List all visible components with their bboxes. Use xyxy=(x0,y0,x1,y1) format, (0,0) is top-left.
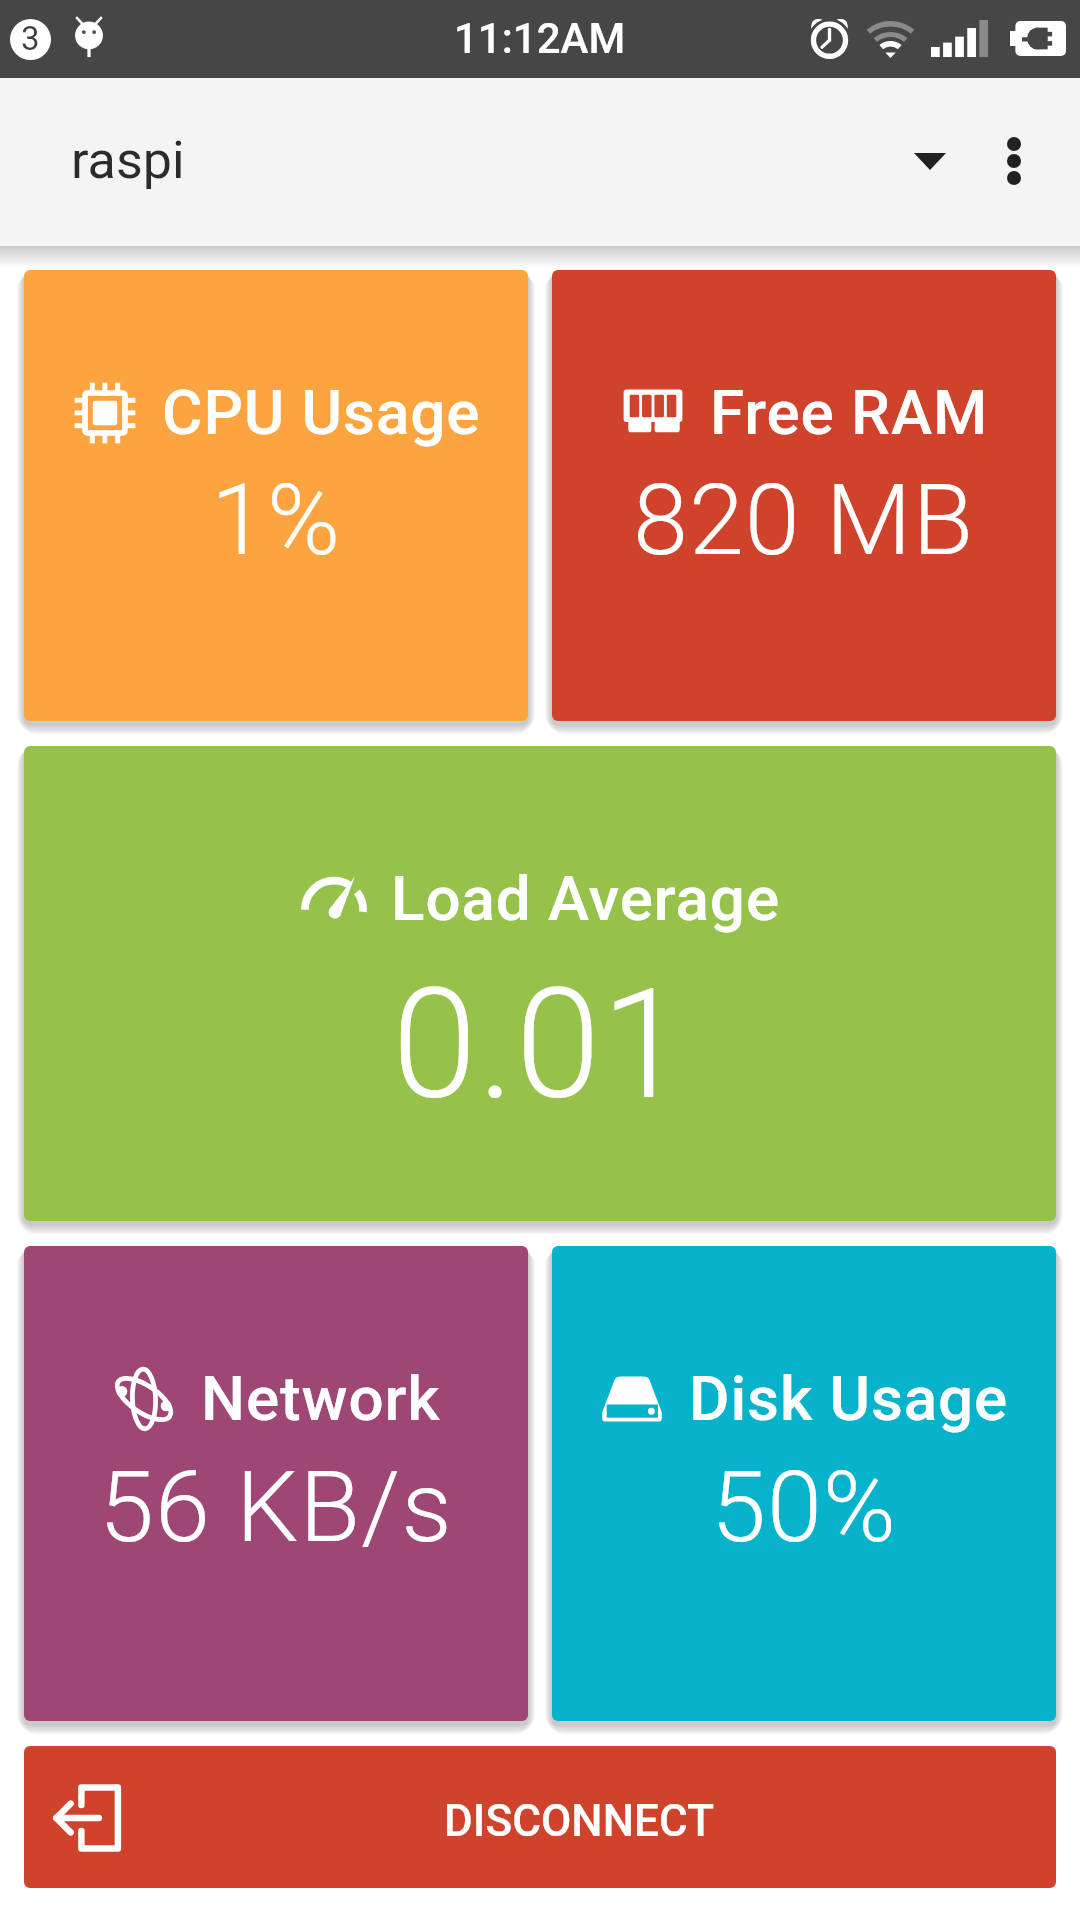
button[interactable]: Disk Usage xyxy=(552,1246,1056,1721)
staticText: 50% xyxy=(711,1449,898,1565)
button[interactable]: CPU Usage xyxy=(24,270,528,721)
button[interactable]: More options xyxy=(950,97,1078,225)
staticText: CPU Usage xyxy=(162,376,481,449)
staticText: Load Average xyxy=(391,862,780,935)
button[interactable]: Choose server xyxy=(866,97,994,225)
staticText: Disk Usage xyxy=(689,1362,1009,1435)
staticText: raspi xyxy=(71,130,185,191)
button[interactable]: Network xyxy=(24,1246,528,1721)
button[interactable]: DISCONNECT xyxy=(24,1746,1056,1888)
staticText: Network xyxy=(201,1362,441,1435)
button[interactable]: Free RAM xyxy=(552,270,1056,721)
staticText: 3 xyxy=(21,19,40,58)
button[interactable]: Load Average xyxy=(24,746,1056,1221)
staticText: 1% xyxy=(211,462,342,578)
staticText: 56 KB/s xyxy=(99,1449,453,1565)
staticText: 820 MB xyxy=(633,462,975,578)
staticText: DISCONNECT xyxy=(444,1795,715,1847)
staticText: Free RAM xyxy=(710,376,989,449)
staticText: 0.01 xyxy=(392,955,688,1134)
staticText: 11:12AM xyxy=(454,14,626,63)
